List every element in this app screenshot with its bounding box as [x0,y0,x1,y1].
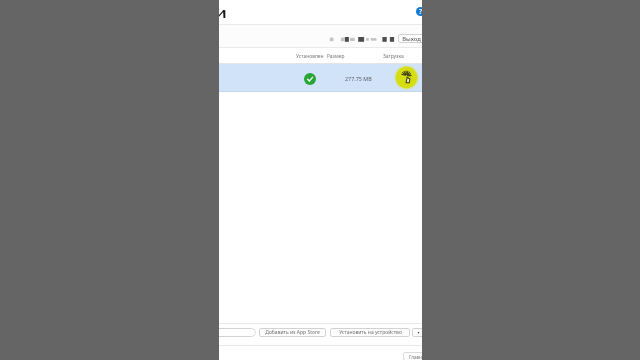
staticText: Добавить из App Store [265,329,320,336]
staticText: ▾ [417,330,420,335]
staticText: Выход [402,35,421,43]
staticText: ? [419,7,422,16]
staticText: Загрузка [383,53,404,60]
staticText: Размер [327,53,345,60]
button[interactable]: Application row, installed, 277.75 MB [219,64,422,92]
staticText: Установлен [296,53,324,60]
button[interactable]: Help [416,7,422,16]
button[interactable]: Добавить из App Store [259,328,326,337]
button[interactable]: ▾ [412,328,422,337]
staticText: 277.75 MB [345,75,372,82]
button[interactable]: Выход [398,34,422,43]
staticText: Главн [409,354,422,360]
button[interactable]: Search field [219,328,256,337]
button[interactable]: Download [394,65,419,90]
button[interactable]: Toolbar actions [327,36,397,44]
button[interactable]: Главн [403,352,422,360]
button[interactable]: Установить на устройство [330,328,410,337]
staticText: Установить на устройство [339,329,402,336]
